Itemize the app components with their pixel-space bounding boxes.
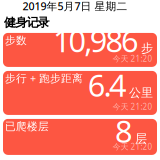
staticText: 10,986 — [53, 20, 139, 61]
button[interactable]: 步数 — [3, 33, 157, 67]
staticText: 步 — [141, 41, 153, 55]
staticText: 2019年5月7日 星期二 — [22, 0, 127, 13]
staticText: 步数 — [5, 34, 27, 47]
staticText: 健身记录 — [4, 15, 50, 30]
staticText: 6.4 — [88, 64, 127, 105]
staticText: 今天 21:20 — [112, 53, 152, 64]
button[interactable]: 步行 + 跑步距离 — [3, 71, 157, 115]
button[interactable]: 已爬楼层 — [3, 119, 157, 155]
staticText: 已爬楼层 — [5, 120, 49, 133]
staticText: 8 — [115, 110, 133, 151]
staticText: 公里 — [129, 85, 153, 100]
staticText: 步行 + 跑步距离 — [5, 71, 83, 85]
staticText: 层 — [135, 131, 147, 146]
staticText: 今天 21:20 — [112, 141, 152, 152]
staticText: 今天 21:20 — [112, 101, 152, 112]
